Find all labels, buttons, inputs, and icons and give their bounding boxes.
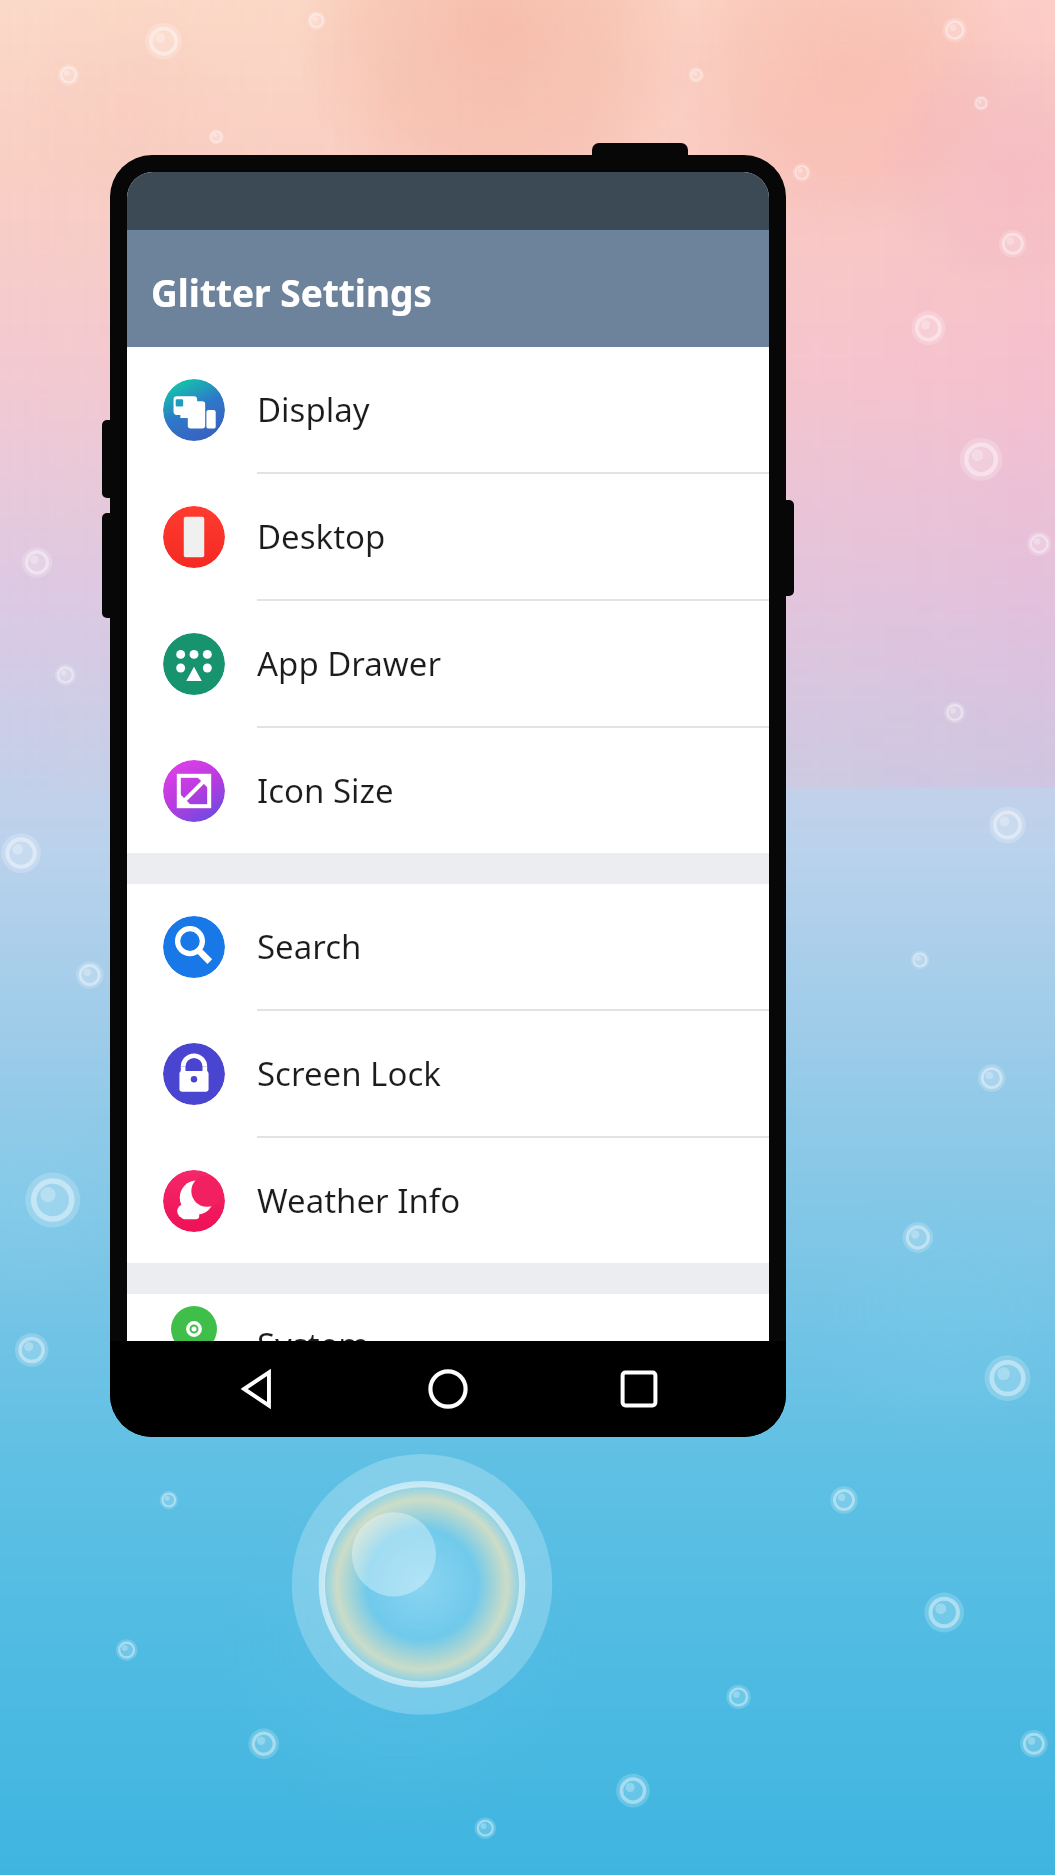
staticText: App Drawer [257, 641, 442, 686]
button[interactable]: Display [127, 347, 769, 472]
button[interactable]: Screen Lock [127, 1011, 769, 1136]
button[interactable]: App Drawer [127, 601, 769, 726]
button[interactable]: Desktop [127, 474, 769, 599]
staticText: System [257, 1322, 370, 1341]
button[interactable]: Weather Info [127, 1138, 769, 1263]
staticText: Desktop [257, 514, 386, 559]
staticText: Icon Size [257, 768, 394, 813]
staticText: Search [257, 924, 362, 969]
button[interactable]: Back [213, 1345, 301, 1433]
staticText: Glitter Settings [151, 267, 432, 317]
staticText: Weather Info [257, 1178, 461, 1223]
button[interactable]: Recent apps [595, 1345, 683, 1433]
button[interactable]: Home [404, 1345, 492, 1433]
button[interactable]: Search [127, 884, 769, 1009]
staticText: Screen Lock [257, 1051, 441, 1096]
button[interactable]: Icon Size [127, 728, 769, 853]
staticText: Display [257, 387, 370, 432]
